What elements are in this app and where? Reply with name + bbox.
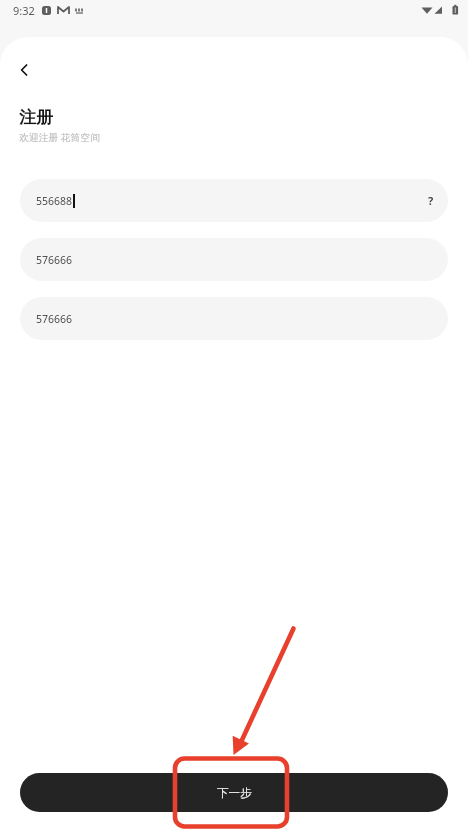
button[interactable]: 576666 [20,238,448,281]
button[interactable] [9,55,38,84]
staticText: 576666 [36,312,73,326]
staticText: 欢迎注册 花筒空间 [19,131,100,144]
staticText: 556688 [36,194,73,208]
staticText: 注册 [19,107,53,128]
button[interactable]: 556688 [20,179,448,222]
staticText: 下一步 [217,786,252,800]
staticText: 576666 [36,253,73,267]
staticText: 9:32 [13,3,35,18]
staticText: ? [428,193,434,208]
button[interactable]: 下一步 [20,773,448,812]
button[interactable]: 576666 [20,297,448,340]
